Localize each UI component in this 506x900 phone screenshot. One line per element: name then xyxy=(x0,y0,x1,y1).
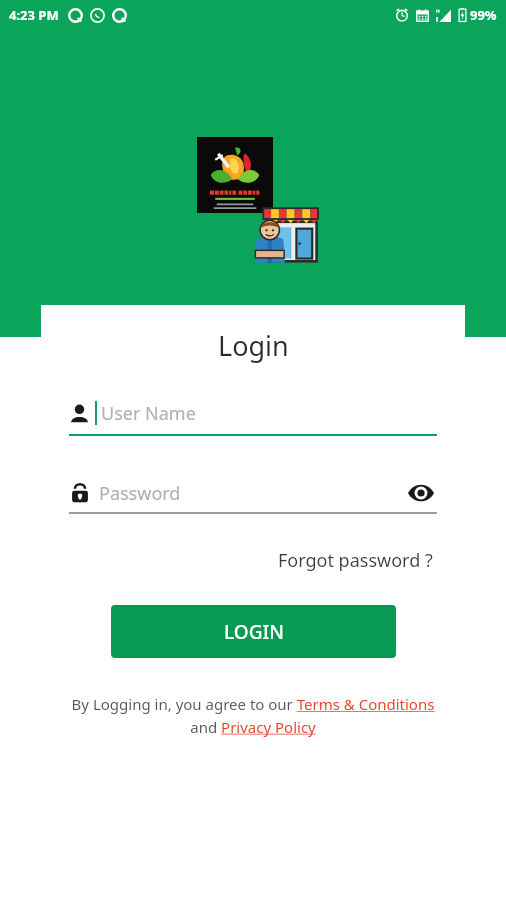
button[interactable]: Password xyxy=(69,476,437,514)
staticText: LOGIN xyxy=(224,619,284,645)
button[interactable]: User Name xyxy=(69,396,437,436)
staticText: Forgot password ? xyxy=(278,548,433,573)
button[interactable]: Show password xyxy=(405,477,437,509)
staticText: Login xyxy=(218,327,289,364)
button[interactable]: By Logging in, you agree to our Terms & … xyxy=(59,694,447,737)
button[interactable]: Forgot password ? xyxy=(274,544,437,577)
staticText: User Name xyxy=(101,401,196,426)
button[interactable]: LOGIN xyxy=(111,605,396,658)
staticText: By Logging in, you agree to our Terms & … xyxy=(59,694,447,737)
staticText: 99% xyxy=(470,6,497,24)
staticText: Password xyxy=(99,481,181,506)
staticText: 4:23 PM xyxy=(9,6,59,24)
